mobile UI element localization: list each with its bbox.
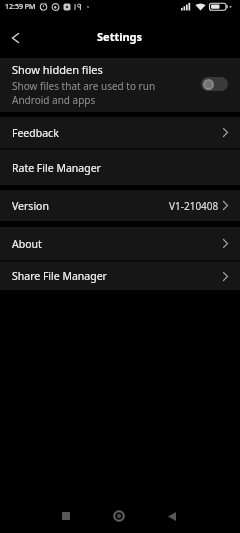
button[interactable]: Show hidden files xyxy=(0,58,240,112)
button[interactable]: Share File Manager xyxy=(0,262,240,290)
staticText: Rate File Manager xyxy=(12,161,101,175)
button[interactable]: Feedback xyxy=(0,117,240,148)
button[interactable] xyxy=(109,506,129,526)
button[interactable]: About xyxy=(0,227,240,260)
button[interactable]: Version xyxy=(0,190,240,221)
button[interactable] xyxy=(5,28,25,48)
staticText: Show files that are used to run Android … xyxy=(12,79,156,107)
staticText: Settings xyxy=(97,29,143,44)
button[interactable] xyxy=(201,77,228,91)
staticText: Share File Manager xyxy=(12,269,107,283)
button[interactable] xyxy=(162,506,182,526)
staticText: About xyxy=(12,237,42,251)
button[interactable]: Rate File Manager xyxy=(0,150,240,185)
staticText: Version xyxy=(12,199,49,213)
staticText: 12:59 PM xyxy=(5,2,36,12)
button[interactable] xyxy=(56,506,76,526)
staticText: V1-210408 xyxy=(169,199,219,213)
staticText: Show hidden files xyxy=(12,62,103,77)
staticText: Feedback xyxy=(12,126,59,140)
